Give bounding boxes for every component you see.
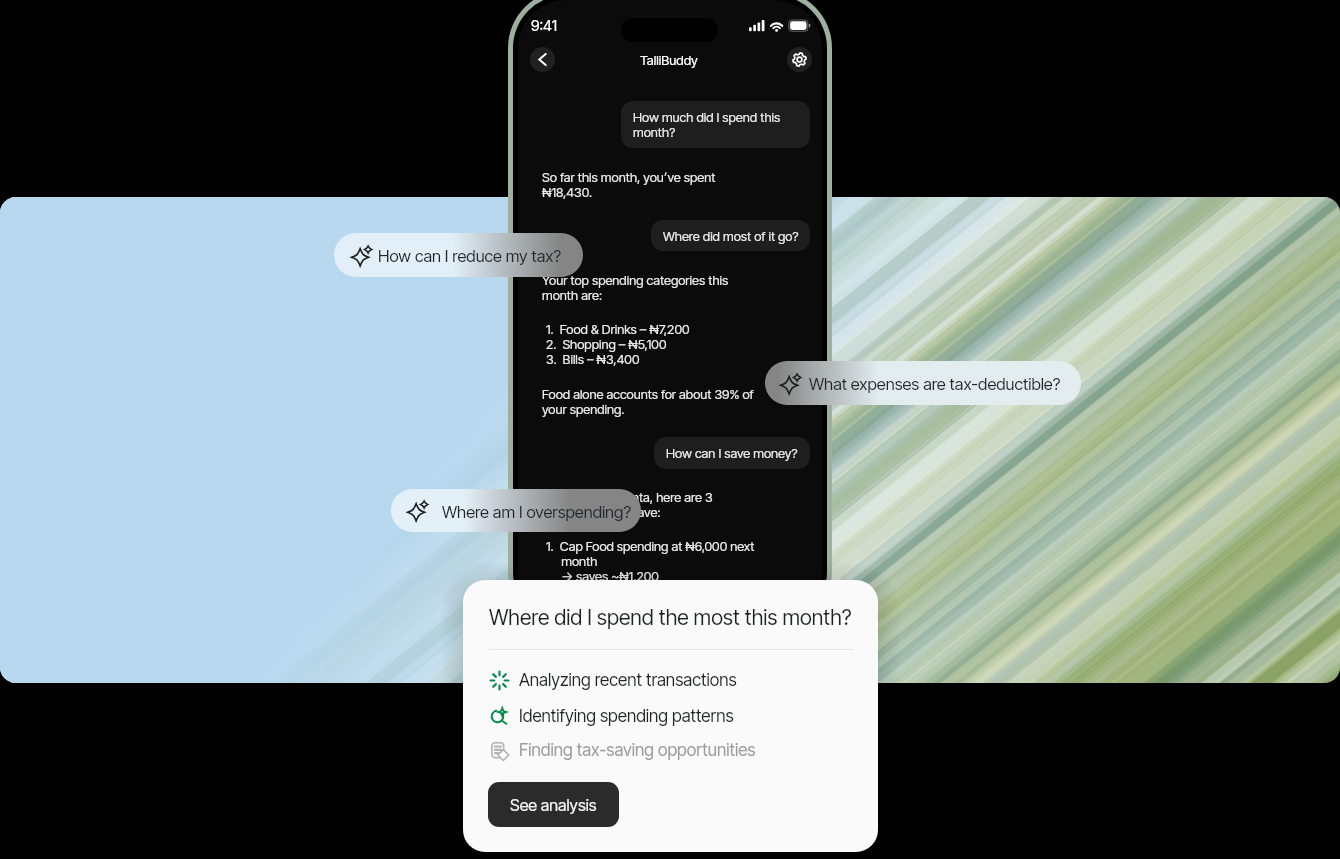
staticText: How can I save money? [666, 445, 798, 461]
button[interactable]: Settings [787, 47, 812, 72]
staticText: How much did I spend this month? [633, 109, 781, 140]
staticText: Based on your data, here are 3 ways you … [542, 489, 713, 520]
button[interactable]: Analyzing recent transactions [490, 665, 860, 691]
staticText: Where did I spend the most this month? [489, 604, 852, 630]
staticText: Where did most of it go? [663, 228, 799, 244]
staticText: So far this month, you’ve spent ₦18,430. [542, 169, 716, 200]
staticText: What expenses are tax-deductible? [809, 374, 1061, 394]
button[interactable]: Identifying spending patterns [490, 701, 860, 727]
button[interactable]: Back [530, 47, 555, 72]
staticText: How can I reduce my tax? [378, 246, 562, 266]
staticText: Finding tax-saving opportunities [519, 739, 756, 760]
button[interactable]: See analysis [488, 782, 619, 827]
staticText: 1. Cap Food spending at ₦6,000 next mont… [546, 538, 755, 584]
staticText: Identifying spending patterns [519, 705, 734, 726]
staticText: Food alone accounts for about 39% of you… [542, 386, 754, 417]
staticText: See analysis [510, 795, 597, 815]
button[interactable]: How much did I spend this month? [621, 101, 810, 148]
staticText: 9:41 [531, 17, 558, 35]
button[interactable]: Where am I overspending? [391, 489, 641, 532]
staticText: Your top spending categories this month … [542, 272, 729, 303]
staticText: Where am I overspending? [442, 502, 632, 522]
staticText: TalliBuddy [640, 52, 698, 68]
staticText: 1. Food & Drinks – ₦7,200 2. Shopping – … [546, 321, 690, 367]
button[interactable]: What expenses are tax-deductible? [765, 361, 1081, 405]
button[interactable]: Finding tax-saving opportunities [490, 735, 860, 761]
button[interactable]: How can I save money? [654, 437, 810, 469]
staticText: Analyzing recent transactions [519, 669, 737, 690]
button[interactable]: How can I reduce my tax? [334, 233, 583, 277]
button[interactable]: Where did most of it go? [651, 220, 810, 251]
